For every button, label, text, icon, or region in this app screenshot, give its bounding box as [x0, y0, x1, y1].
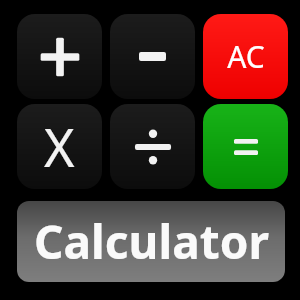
button[interactable]: Calculator — [17, 201, 285, 282]
button[interactable]: Minus — [110, 14, 195, 99]
staticText: X — [44, 111, 75, 182]
button[interactable]: Multiply — [17, 104, 102, 189]
button[interactable]: Plus — [17, 14, 102, 99]
button[interactable]: Equals — [203, 104, 288, 189]
button[interactable]: Divide — [110, 104, 195, 189]
staticText: AC — [227, 36, 265, 77]
button[interactable]: All clear — [203, 14, 288, 99]
staticText: Calculator — [34, 210, 269, 273]
